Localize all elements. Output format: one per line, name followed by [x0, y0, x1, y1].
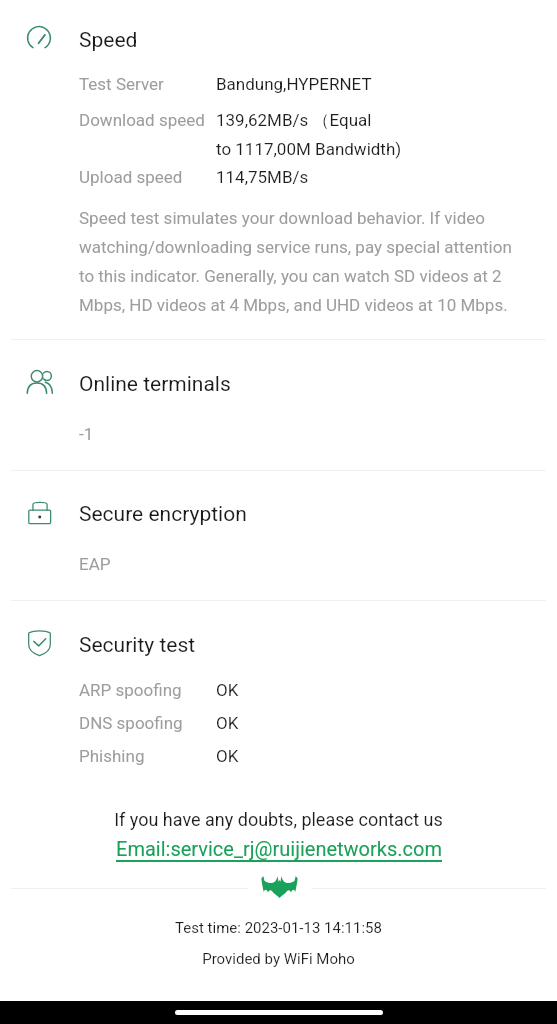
staticText: Test time: 2023-01-13 14:11:58 [0, 919, 557, 937]
staticText: Download speed [79, 110, 205, 130]
button[interactable]: Speed [27, 26, 51, 50]
staticText: Test Server [79, 74, 164, 94]
staticText: OK [216, 680, 239, 700]
staticText: ARP spoofing [79, 680, 182, 700]
staticText: Phishing [79, 746, 145, 766]
staticText: OK [216, 713, 239, 733]
staticText: Provided by WiFi Moho [0, 950, 557, 968]
staticText: Speed test simulates your download behav… [79, 208, 525, 315]
staticText: Secure encryption [79, 502, 247, 527]
staticText: Email:service_rj@ruijienetworks.com [116, 837, 442, 860]
staticText: EAP [79, 554, 111, 574]
staticText: Upload speed [79, 167, 183, 187]
staticText: -1 [79, 424, 94, 444]
button[interactable]: Online terminals [26, 368, 53, 395]
button[interactable]: Security test [28, 630, 51, 656]
staticText: DNS spoofing [79, 713, 183, 733]
staticText: OK [216, 746, 239, 766]
staticText: Bandung,HYPERNET [216, 74, 372, 94]
button[interactable]: Secure encryption [28, 501, 51, 524]
staticText: Online terminals [79, 372, 231, 397]
button[interactable]: Email:service_rj@ruijienetworks.com [116, 837, 442, 865]
staticText: If you have any doubts, please contact u… [0, 809, 557, 830]
staticText: 139,62MB/s （Equal to 1117,00M Bandwidth) [216, 110, 402, 159]
staticText: Security test [79, 633, 196, 658]
staticText: 114,75MB/s [216, 167, 309, 187]
staticText: Speed [79, 28, 138, 53]
